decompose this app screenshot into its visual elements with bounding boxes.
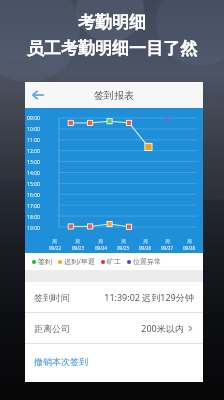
staticText: 09/23: [72, 245, 84, 251]
staticText: 16:00: [27, 192, 40, 199]
staticText: 09:00: [27, 115, 40, 122]
staticText: 11:39:02 迟到129分钟: [104, 291, 194, 303]
staticText: 位置异常: [133, 257, 161, 266]
staticText: 200米以内: [141, 322, 184, 334]
button[interactable]: 位置异常: [127, 257, 161, 266]
staticText: 周: [121, 239, 126, 245]
staticText: 10:00: [27, 126, 40, 133]
staticText: 迟到/早退: [64, 257, 95, 267]
staticText: 13:00: [27, 159, 40, 166]
staticText: 15:00: [27, 181, 40, 188]
staticText: 09/28: [183, 245, 195, 251]
staticText: 签到时间: [34, 292, 70, 303]
staticText: 员工考勤明细一目了然: [27, 38, 197, 59]
staticText: 周: [165, 239, 170, 245]
staticText: 09/27: [161, 245, 173, 251]
staticText: 考勤明细: [78, 12, 146, 33]
staticText: 09/22: [49, 245, 61, 251]
staticText: 14:00: [27, 170, 40, 177]
staticText: 09/25: [117, 245, 129, 251]
staticText: 11:00: [27, 137, 40, 144]
staticText: 周: [143, 239, 148, 245]
staticText: 18:00: [27, 214, 40, 221]
button[interactable]: 签到: [32, 257, 52, 266]
staticText: 距离公司: [34, 323, 70, 334]
staticText: 周: [75, 239, 80, 245]
staticText: 周: [52, 239, 57, 245]
staticText: 19:00: [27, 225, 40, 232]
staticText: 09/24: [95, 245, 107, 251]
button[interactable]: 旷工: [101, 257, 121, 266]
staticText: 旷工: [107, 257, 121, 266]
staticText: 17:00: [27, 203, 40, 210]
button[interactable]: 距离公司: [25, 313, 203, 343]
button[interactable]: 返回: [25, 82, 51, 108]
staticText: 签到报表: [94, 89, 134, 102]
staticText: 12:00: [27, 148, 40, 155]
button[interactable]: 迟到/早退: [58, 257, 95, 267]
staticText: 签到: [38, 257, 52, 266]
button[interactable]: 签到时间: [25, 282, 203, 312]
staticText: 周: [98, 239, 103, 245]
staticText: 周: [187, 239, 192, 245]
staticText: 09/26: [139, 245, 151, 251]
button[interactable]: 撤销本次签到: [25, 344, 203, 378]
staticText: 撤销本次签到: [34, 356, 88, 367]
